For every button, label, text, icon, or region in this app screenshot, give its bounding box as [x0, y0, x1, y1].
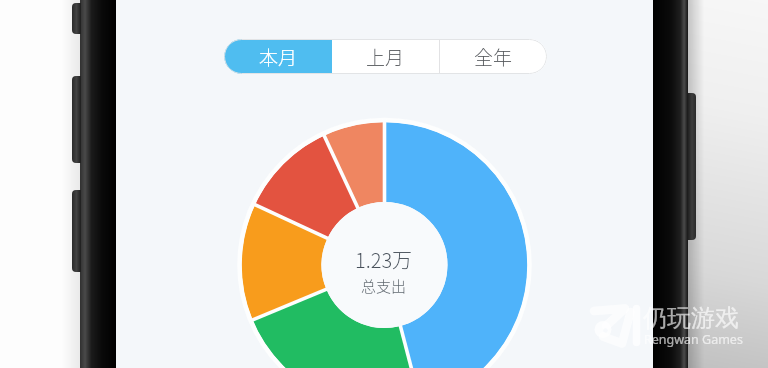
staticText: 1.23万 — [355, 245, 413, 274]
staticText: 仍玩游戏 — [643, 303, 739, 333]
staticText: 全年 — [474, 43, 513, 71]
staticText: 总支出 — [361, 275, 407, 297]
button[interactable]: 本月 — [224, 39, 332, 74]
staticText: 本月 — [259, 43, 298, 71]
staticText: Rengwan Games — [644, 331, 743, 348]
staticText: 上月 — [366, 43, 405, 71]
button[interactable]: 全年 — [440, 39, 547, 74]
button[interactable]: 上月 — [332, 39, 439, 74]
